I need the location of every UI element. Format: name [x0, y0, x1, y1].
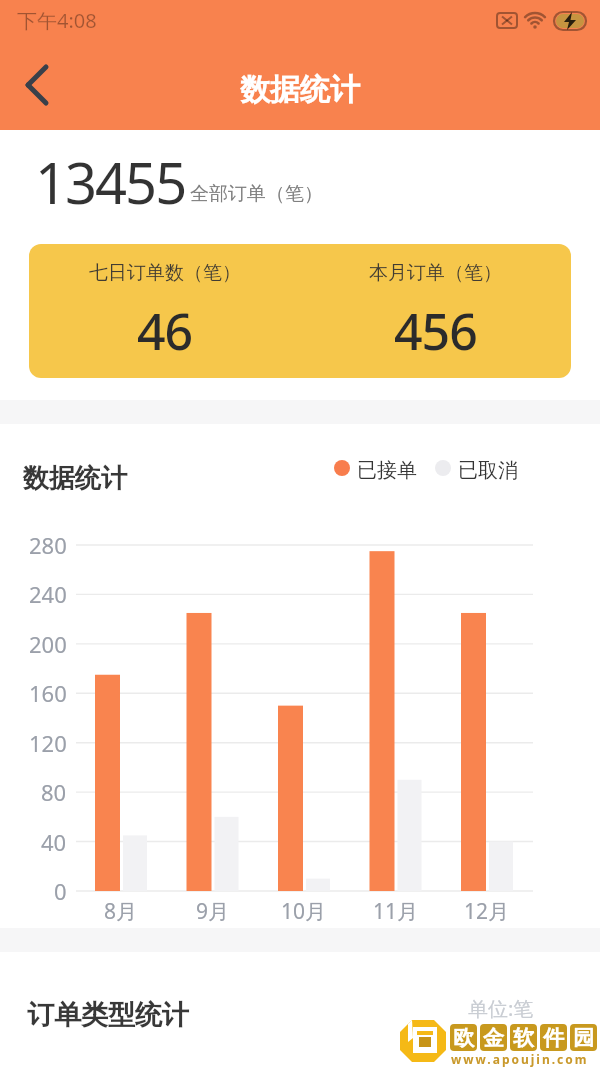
staticText: 200: [29, 629, 67, 659]
staticText: 本月订单（笔）: [369, 261, 502, 285]
staticText: 160: [29, 678, 67, 708]
staticText: 280: [29, 530, 67, 560]
staticText: 下午4:08: [17, 7, 97, 34]
button[interactable]: [12, 62, 60, 110]
staticText: 40: [41, 827, 67, 857]
staticText: www.apoujin.com: [451, 1051, 589, 1067]
staticText: 10月: [281, 897, 327, 926]
staticText: 欧: [453, 1025, 474, 1051]
staticText: 9月: [196, 897, 230, 926]
staticText: 13455: [35, 144, 186, 220]
staticText: 12月: [464, 897, 510, 926]
staticText: 件: [543, 1025, 564, 1051]
staticText: 已取消: [458, 458, 518, 483]
staticText: 0: [54, 876, 67, 906]
staticText: 单位:笔: [468, 995, 534, 1022]
staticText: 园: [573, 1025, 594, 1051]
staticText: 数据统计: [23, 462, 127, 495]
button[interactable]: [29, 244, 571, 378]
staticText: 456: [394, 297, 477, 365]
staticText: 订单类型统计: [27, 998, 189, 1032]
staticText: 11月: [373, 897, 419, 926]
staticText: 46: [137, 297, 193, 365]
staticText: 240: [29, 579, 67, 609]
staticText: 金: [483, 1025, 504, 1051]
staticText: 软: [513, 1025, 534, 1051]
staticText: 120: [29, 728, 67, 758]
staticText: 8月: [104, 897, 138, 926]
staticText: 全部订单（笔）: [190, 182, 323, 206]
staticText: 数据统计: [240, 71, 360, 109]
staticText: 七日订单数（笔）: [89, 261, 241, 285]
staticText: 已接单: [357, 458, 417, 483]
staticText: 80: [41, 777, 67, 807]
